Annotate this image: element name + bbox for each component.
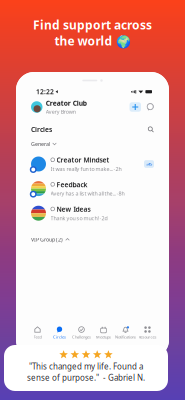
staticText: Creator Mindset (56, 155, 109, 164)
staticText: New Ideas (56, 205, 90, 214)
staticText: Resources (138, 334, 156, 340)
button[interactable]: Challenges (70, 325, 92, 340)
staticText: General (31, 140, 50, 148)
button[interactable]: Notifications (114, 325, 136, 340)
staticText: Challenges (72, 334, 91, 340)
button[interactable]: General (16, 140, 169, 148)
button[interactable]: Messages (141, 103, 154, 111)
staticText: VIP Group (2) (31, 236, 63, 243)
button[interactable]: Circles (48, 325, 70, 340)
button[interactable]: Creator Mindset (16, 152, 169, 176)
button[interactable]: Feedback (16, 177, 169, 201)
button[interactable]: Meetups (92, 325, 114, 340)
button[interactable]: New Ideas (16, 201, 169, 225)
staticText: "This changed my life. Found a (29, 361, 143, 372)
staticText: Notifications (115, 334, 136, 340)
button[interactable]: VIP Group (2) (16, 235, 169, 243)
staticText: 12:22 (36, 87, 54, 96)
staticText: Feedback (56, 180, 87, 189)
staticText: sense of purpose." - Gabriel N. (27, 372, 145, 383)
button[interactable]: New post (129, 102, 141, 112)
button[interactable]: Search (148, 126, 154, 133)
staticText: Feed (33, 334, 41, 340)
staticText: Circles (31, 125, 52, 134)
staticText: Avery has a list with all the... · 8h (50, 190, 124, 197)
staticText: Find support across (33, 17, 152, 33)
staticText: Circles (53, 334, 66, 340)
staticText: the world 🌍 (54, 33, 130, 49)
staticText: Avery Brown (46, 108, 76, 115)
button[interactable]: Resources (136, 325, 158, 340)
staticText: Meetups (96, 334, 111, 340)
staticText: +45 (146, 161, 152, 167)
staticText: Creator Club (46, 99, 87, 108)
button[interactable]: Feed (26, 325, 48, 340)
staticText: Thank you so much! · 2d (50, 215, 107, 222)
staticText: It was really fun to make... · 2h (50, 165, 121, 172)
